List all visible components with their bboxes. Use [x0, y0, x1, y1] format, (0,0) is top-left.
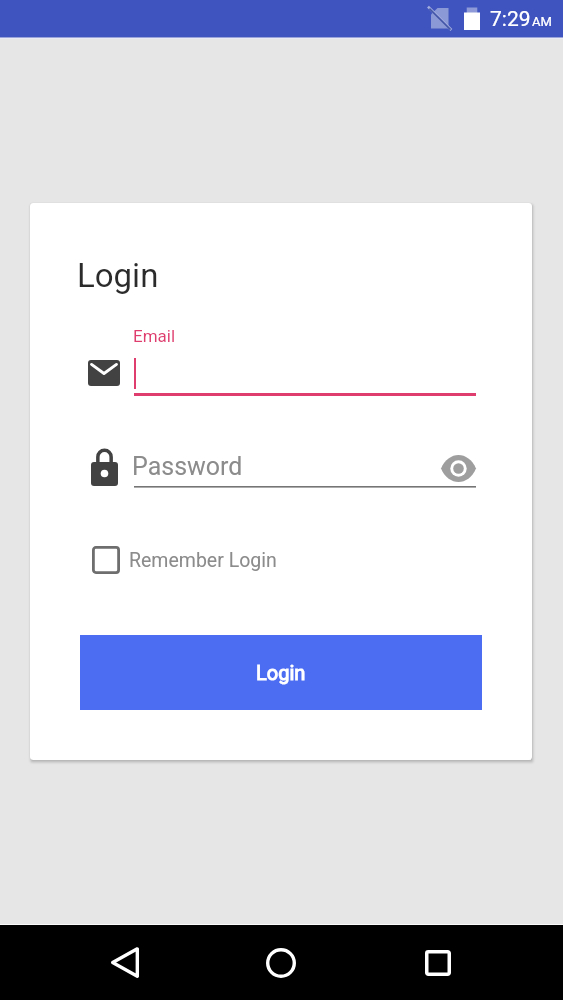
- other: No SIM card: [426, 4, 454, 34]
- staticText: Login: [256, 661, 306, 684]
- button[interactable]: Recent apps: [398, 925, 478, 1000]
- button[interactable]: Login: [80, 635, 482, 710]
- other: Battery: [464, 6, 480, 30]
- staticText: Email: [133, 326, 176, 346]
- button[interactable]: Back: [85, 925, 165, 1000]
- staticText: Password: [132, 452, 243, 481]
- button[interactable]: Password: [84, 446, 124, 490]
- staticText: 7:29: [490, 7, 531, 32]
- button[interactable]: Password input field: [134, 448, 434, 490]
- staticText: Login: [77, 256, 159, 295]
- button[interactable]: Show password: [433, 446, 483, 490]
- staticText: Remember Login: [129, 549, 277, 572]
- button[interactable]: Remember Login: [83, 537, 277, 583]
- button[interactable]: Email input field: [134, 323, 476, 396]
- button[interactable]: Home: [241, 925, 321, 1000]
- button[interactable]: Email: [84, 353, 124, 393]
- staticText: AM: [532, 14, 552, 29]
